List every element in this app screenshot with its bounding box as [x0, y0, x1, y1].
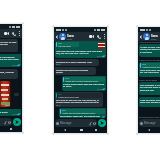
other: Back	[139, 35, 143, 39]
other: Back	[55, 35, 59, 39]
button[interactable]: I hope so and I wasn't talking about the…	[139, 44, 160, 57]
button[interactable]: Not bringing it if I'm going to go over,…	[139, 82, 160, 95]
button[interactable]: Back	[138, 32, 160, 41]
button[interactable]: Sara	[55, 41, 106, 58]
staticText: 09:42	[56, 63, 61, 65]
staticText: Luckily the washing machine works	[65, 80, 99, 82]
staticText: I don't know what size are you trying to…	[63, 82, 105, 88]
button[interactable]: Photo	[0, 81, 11, 107]
button[interactable]: Voice call	[95, 33, 102, 40]
button[interactable]: Message	[139, 119, 160, 127]
staticText: 09:41	[97, 55, 102, 57]
staticText: Message	[60, 121, 72, 125]
staticText: When that was the photo	[139, 41, 160, 43]
staticText: I cannot look at the photo for now	[139, 59, 160, 61]
staticText: It would by 5 kgs if washed 10m	[56, 60, 92, 63]
button[interactable]: Nice shelves, I really like them	[0, 109, 21, 116]
staticText: Yes I did, looks good but the kitchen ne…	[0, 55, 20, 64]
staticText: Send me a picture of it please, I would …	[0, 70, 17, 76]
staticText: Sure take your time, there is no rush at…	[140, 68, 160, 74]
staticText: online	[67, 38, 73, 40]
staticText: 10:11	[5, 104, 10, 106]
button[interactable]: Hey! Did you get a chance to look at tha…	[0, 39, 18, 52]
button[interactable]: Back	[144, 127, 154, 133]
staticText: 09:45	[56, 104, 61, 106]
staticText: Sara	[62, 109, 67, 112]
staticText: 10:05	[12, 64, 17, 66]
button[interactable]: Message	[55, 119, 97, 127]
button[interactable]: Reaction	[14, 93, 19, 96]
staticText: Of course I have not, I'm telling you ex…	[60, 114, 105, 117]
staticText: Luckily the washing machine works	[62, 112, 96, 114]
staticText: online	[151, 38, 157, 40]
button[interactable]: Sara	[59, 108, 106, 118]
staticText: Nice shelves, I really like them	[0, 110, 8, 113]
button[interactable]: Send	[13, 118, 21, 126]
staticText: I cannot look at the photo	[142, 66, 160, 68]
button[interactable]: Back	[54, 32, 107, 41]
staticText: You	[58, 93, 62, 96]
staticText: When it fix the gowns	[139, 79, 158, 81]
staticText: I hope so and I wasn't talking about the…	[140, 45, 160, 54]
button[interactable]: Home	[76, 127, 86, 133]
staticText: Not bringing it if I'm going to go over,…	[140, 83, 160, 92]
staticText: Sara	[67, 34, 74, 38]
button[interactable]: Sara	[62, 76, 106, 91]
staticText: Hey! Did you get a chance to look at tha…	[0, 40, 17, 49]
staticText: Sara	[65, 77, 70, 80]
button[interactable]: Recents	[6, 126, 16, 132]
button[interactable]: Sara	[139, 62, 160, 77]
button[interactable]: It would by 5 kgs if washed 10m	[55, 59, 99, 66]
button[interactable]: Yes I did, looks good but the kitchen ne…	[0, 54, 21, 67]
staticText: Can you send	[58, 45, 71, 47]
staticText: 10:14	[12, 113, 17, 115]
button[interactable]: Recents	[91, 127, 101, 133]
button[interactable]: You	[55, 92, 103, 107]
button[interactable]: Voice call	[10, 30, 17, 37]
staticText: This one isn't for the repair that you g…	[56, 49, 105, 55]
staticText: I don't know what size	[58, 96, 79, 98]
staticText: Sara	[142, 63, 147, 66]
button[interactable]: Video call	[0, 29, 22, 38]
staticText: Message	[144, 121, 156, 125]
button[interactable]: Message	[0, 118, 12, 126]
button[interactable]: More options	[17, 30, 21, 37]
staticText: 09:44	[97, 88, 102, 90]
button[interactable]: I will be there tomorrow morning, see yo…	[139, 97, 160, 107]
staticText: So I had to pay 50K for the cleaning, it…	[56, 98, 102, 104]
button[interactable]: Video call	[88, 33, 95, 40]
staticText: Sara	[151, 34, 158, 38]
button[interactable]: Send	[98, 119, 106, 127]
button[interactable]: Luckily the washing machine works	[55, 67, 96, 75]
staticText: He usually wants to do it	[139, 116, 160, 118]
button[interactable]: Video call	[3, 30, 10, 37]
button[interactable]: Back	[60, 127, 70, 133]
staticText: I will be there tomorrow morning, see yo…	[140, 98, 160, 104]
button[interactable]: More options	[102, 33, 106, 40]
staticText: Sara	[58, 42, 63, 45]
staticText: Luckily the washing machine works	[56, 68, 95, 74]
button[interactable]: Send me a picture of it please, I would …	[0, 69, 18, 79]
